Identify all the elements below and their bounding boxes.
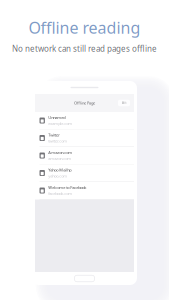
staticText: example.com bbox=[48, 121, 72, 126]
button[interactable]: Twitter bbox=[35, 129, 134, 147]
button[interactable]: Welcome to Facebook bbox=[35, 182, 134, 199]
staticText: facebook.com bbox=[48, 191, 72, 196]
button[interactable]: Yahoo Mailhp bbox=[35, 164, 134, 182]
staticText: Welcome to Facebook bbox=[48, 185, 86, 190]
button[interactable]: Edit bbox=[118, 100, 130, 106]
staticText: Twitter bbox=[48, 132, 60, 138]
staticText: Unnamed bbox=[48, 115, 65, 120]
staticText: No network can still read pages offline bbox=[12, 43, 157, 54]
button[interactable]: Unnamed bbox=[35, 112, 134, 129]
staticText: Offline Page bbox=[74, 100, 95, 106]
button[interactable]: Amazon.com bbox=[35, 147, 134, 164]
staticText: yahoo.com bbox=[48, 173, 67, 179]
staticText: twitter.com bbox=[48, 138, 67, 144]
staticText: amazon.com bbox=[48, 156, 71, 161]
staticText: Offline reading bbox=[28, 17, 140, 38]
staticText: Amazon.com bbox=[48, 150, 72, 155]
staticText: Edit bbox=[121, 101, 126, 105]
staticText: Yahoo Mailhp bbox=[48, 167, 71, 173]
